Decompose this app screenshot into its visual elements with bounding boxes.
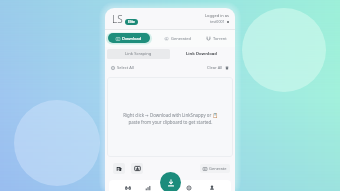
button[interactable]: Settings: [183, 182, 195, 191]
button[interactable]: Stats: [142, 182, 154, 191]
staticText: LS: [112, 12, 123, 26]
button[interactable]: Select All: [111, 65, 134, 70]
staticText: Clear All: [207, 65, 223, 70]
staticText: Generated: [171, 36, 191, 41]
staticText: Link Scraping: [125, 51, 152, 57]
button[interactable]: Save: [131, 163, 143, 174]
button[interactable]: Download: [108, 33, 150, 43]
button[interactable]: Download: [160, 172, 181, 191]
button[interactable]: Link Download: [170, 49, 233, 59]
button[interactable]: Generate: [200, 164, 230, 173]
staticText: Right click → Download with LinkSnappy o…: [123, 112, 218, 125]
button[interactable]: Torrent: [206, 36, 227, 41]
staticText: Torrent: [213, 36, 227, 41]
button[interactable]: Link Scraping: [107, 49, 170, 59]
button[interactable]: Clear All: [207, 65, 229, 70]
button[interactable]: Explore: [122, 182, 134, 191]
staticText: Link Download: [186, 51, 217, 57]
button[interactable]: Paste from clipboard: [113, 163, 125, 174]
button[interactable]: Generated: [164, 36, 191, 41]
staticText: Elite: [128, 20, 135, 24]
staticText: test0001: [210, 19, 225, 24]
staticText: Generate: [209, 166, 227, 171]
button[interactable]: Profile: [206, 182, 218, 191]
staticText: Download: [122, 36, 142, 41]
staticText: Select All: [117, 65, 134, 70]
staticText: Logged in as: [205, 13, 229, 18]
